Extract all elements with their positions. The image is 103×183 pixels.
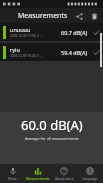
staticText: About noise bbox=[55, 176, 74, 180]
staticText: Noise bbox=[8, 176, 17, 180]
staticText: unuuuu bbox=[10, 26, 31, 33]
button[interactable]: ryiu bbox=[0, 43, 103, 61]
button[interactable]: unuuuu bbox=[0, 23, 103, 41]
button[interactable]: Share bbox=[72, 9, 86, 23]
staticText: 2025-12-09 16:40, 0 ... bbox=[10, 54, 43, 58]
staticText: Average for all measurements bbox=[25, 136, 79, 141]
staticText: Measurements bbox=[26, 176, 50, 180]
button[interactable]: About noise bbox=[51, 164, 77, 183]
staticText: 2025-12-09 17:06, 0 ... bbox=[10, 34, 43, 38]
staticText: ryiu bbox=[10, 46, 20, 53]
button[interactable]: Noise bbox=[0, 164, 25, 183]
staticText: Measurements bbox=[18, 11, 68, 21]
button[interactable]: Delete bbox=[87, 9, 101, 23]
button[interactable]: Measurements bbox=[25, 164, 51, 183]
staticText: Language bbox=[82, 176, 98, 180]
staticText: 59.4 dB(A) bbox=[61, 49, 88, 56]
staticText: 60.0 dB(A) bbox=[21, 116, 83, 134]
button[interactable]: Language bbox=[77, 164, 103, 183]
staticText: 60.7 dB(A) bbox=[61, 29, 88, 36]
